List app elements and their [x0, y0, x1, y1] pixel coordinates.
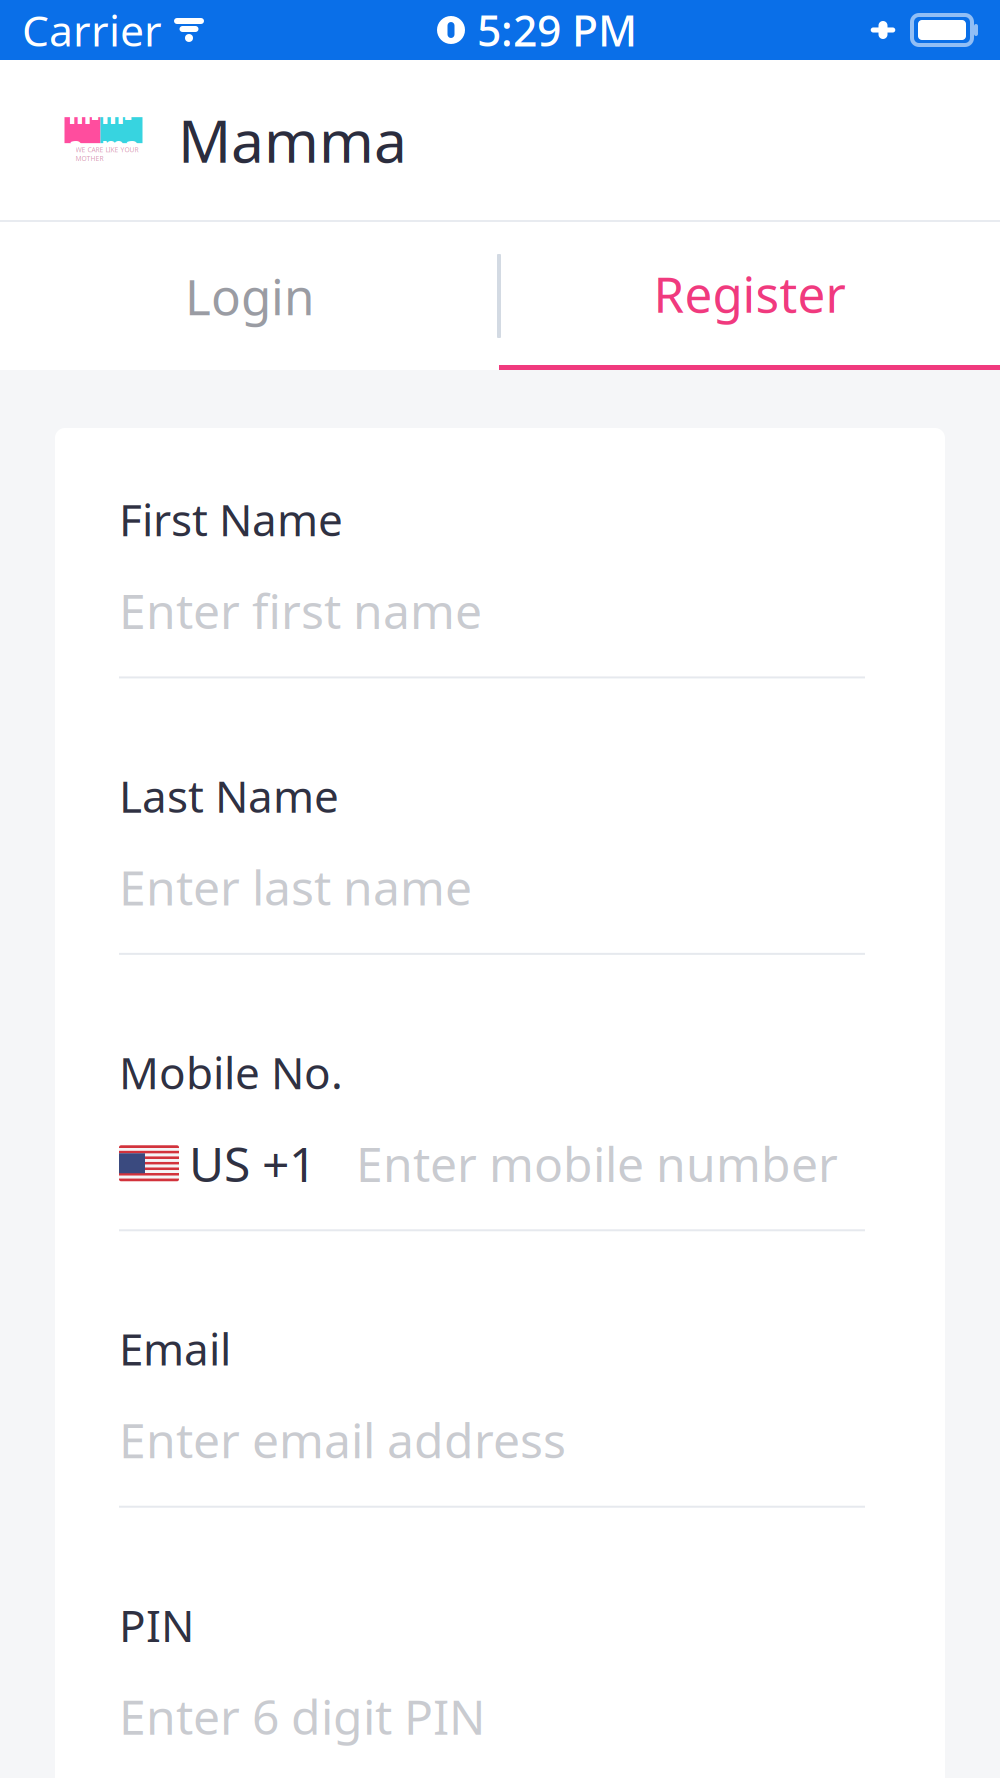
button[interactable]: Enter 6 digit PIN: [119, 1692, 865, 1778]
staticText: Enter 6 digit PIN: [119, 1684, 485, 1748]
staticText: Login: [185, 263, 314, 329]
staticText: Last Name: [119, 766, 339, 825]
staticText: Enter email address: [119, 1408, 566, 1471]
staticText: US +1: [189, 1131, 316, 1195]
staticText: Enter last name: [119, 855, 472, 919]
staticText: PIN: [119, 1596, 194, 1654]
button[interactable]: Enter last name: [119, 863, 865, 955]
staticText: 5:29 PM: [477, 2, 637, 58]
staticText: Register: [653, 261, 845, 326]
staticText: ma: [68, 100, 98, 160]
staticText: First Name: [119, 490, 343, 548]
staticText: Enter mobile number: [356, 1131, 838, 1195]
button[interactable]: Register: [499, 222, 1000, 370]
staticText: Mamma: [178, 101, 407, 179]
staticText: WE CARE LIKE YOUR MOTHER: [75, 145, 138, 163]
staticText: Mobile No.: [119, 1043, 343, 1101]
staticText: Enter first name: [119, 579, 482, 642]
button[interactable]: Enter first name: [119, 586, 865, 678]
staticText: mma: [101, 100, 138, 160]
button[interactable]: US +1: [119, 1139, 865, 1231]
staticText: Carrier: [22, 2, 162, 58]
button[interactable]: Login: [0, 222, 499, 370]
staticText: Email: [119, 1319, 231, 1378]
button[interactable]: Enter email address: [119, 1416, 865, 1508]
